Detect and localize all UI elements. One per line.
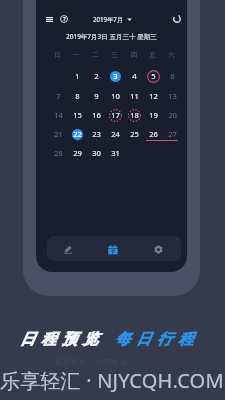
staticText: 乐享轻汇 · NJYCQH.COM — [0, 367, 224, 394]
button[interactable]: 8 — [67, 86, 86, 105]
button[interactable]: 2 — [86, 66, 105, 85]
staticText: 一 — [73, 51, 80, 59]
button[interactable]: 5 — [143, 66, 162, 85]
button[interactable]: 9 — [86, 86, 105, 105]
staticText: 9 — [94, 91, 99, 101]
staticText: 16 — [92, 110, 101, 120]
button[interactable]: Help — [57, 12, 71, 26]
button[interactable]: Edit — [58, 239, 78, 259]
staticText: 26 — [149, 129, 158, 139]
staticText: 31 — [111, 148, 120, 158]
staticText: 五 — [149, 51, 156, 59]
button[interactable]: Settings — [148, 239, 168, 259]
button[interactable]: 1 — [67, 66, 86, 85]
staticText: 13 — [168, 91, 177, 101]
button[interactable]: 20 — [162, 105, 181, 124]
button[interactable]: 18 — [124, 105, 143, 124]
button[interactable]: 25 — [124, 124, 143, 143]
staticText: 21 — [54, 129, 63, 139]
staticText: 6 — [170, 71, 175, 81]
staticText: 7 — [56, 91, 61, 101]
staticText: 3 — [113, 71, 118, 81]
button[interactable]: 六 — [162, 45, 181, 64]
staticText: 2019年7月 — [93, 15, 124, 23]
staticText: 22 — [73, 129, 82, 139]
button[interactable]: 19 — [143, 105, 162, 124]
staticText: 15 — [73, 110, 82, 120]
button[interactable]: 13 — [162, 86, 181, 105]
button[interactable]: 16 — [86, 105, 105, 124]
staticText: 17 — [111, 110, 120, 120]
button[interactable]: Menu — [42, 12, 56, 26]
button[interactable]: 29 — [67, 143, 86, 162]
staticText: 2 — [94, 71, 99, 81]
staticText: 19 — [149, 110, 158, 120]
button[interactable]: 4 — [124, 66, 143, 85]
button[interactable]: 四 — [124, 45, 143, 64]
button[interactable]: 6 — [162, 66, 181, 85]
staticText: 12 — [149, 91, 158, 101]
button[interactable]: 31 — [105, 143, 124, 162]
staticText: 14 — [54, 110, 63, 120]
button[interactable]: 27 — [162, 124, 181, 143]
staticText: 4 — [132, 71, 137, 81]
button[interactable]: 28 — [48, 143, 67, 162]
staticText: 27 — [168, 129, 177, 139]
button[interactable]: 10 — [105, 86, 124, 105]
button[interactable]: 23 — [86, 124, 105, 143]
staticText: 28 — [54, 148, 63, 158]
button[interactable]: 7 — [48, 86, 67, 105]
button[interactable]: 21 — [48, 124, 67, 143]
button[interactable]: 3 — [105, 66, 124, 85]
button[interactable]: Refresh — [170, 12, 184, 26]
staticText: 每日行程 — [112, 330, 196, 349]
staticText: 10 — [111, 91, 120, 101]
button[interactable]: 2019年7月 — [93, 12, 132, 26]
button[interactable]: 17 — [105, 105, 124, 124]
staticText: 23 — [92, 129, 101, 139]
staticText: 二 — [92, 51, 99, 59]
staticText: ? — [63, 15, 66, 23]
button[interactable]: 15 — [67, 105, 86, 124]
staticText: 20 — [168, 110, 177, 120]
staticText: 25 — [130, 129, 139, 139]
staticText: 18 — [130, 110, 139, 120]
staticText: 四 — [130, 51, 137, 59]
staticText: 5 — [151, 71, 156, 81]
staticText: 六 — [168, 51, 175, 59]
button[interactable]: 12 — [143, 86, 162, 105]
button[interactable]: 日 — [48, 45, 67, 64]
button[interactable]: 14 — [48, 105, 67, 124]
button[interactable]: 11 — [124, 86, 143, 105]
staticText: 29 — [73, 148, 82, 158]
staticText: 备忘信息 · 一周可见 — [55, 357, 128, 367]
button[interactable]: 五 — [143, 45, 162, 64]
staticText: 11 — [130, 91, 139, 101]
staticText: 30 — [92, 148, 101, 158]
button[interactable]: 22 — [67, 124, 86, 143]
button[interactable]: Calendar — [103, 239, 123, 259]
staticText: 日程预览 — [17, 330, 101, 349]
staticText: 日 — [54, 51, 61, 59]
staticText: 24 — [111, 129, 120, 139]
button[interactable]: 三 — [105, 45, 124, 64]
button[interactable]: 24 — [105, 124, 124, 143]
button[interactable]: 26 — [143, 124, 162, 143]
staticText: 三 — [111, 51, 118, 59]
button[interactable]: 30 — [86, 143, 105, 162]
staticText: 8 — [75, 91, 80, 101]
staticText: 1 — [75, 71, 80, 81]
button[interactable]: 一 — [67, 45, 86, 64]
button[interactable]: 二 — [86, 45, 105, 64]
staticText: 2019年7月3日 五月三十 星期三 — [66, 32, 157, 41]
